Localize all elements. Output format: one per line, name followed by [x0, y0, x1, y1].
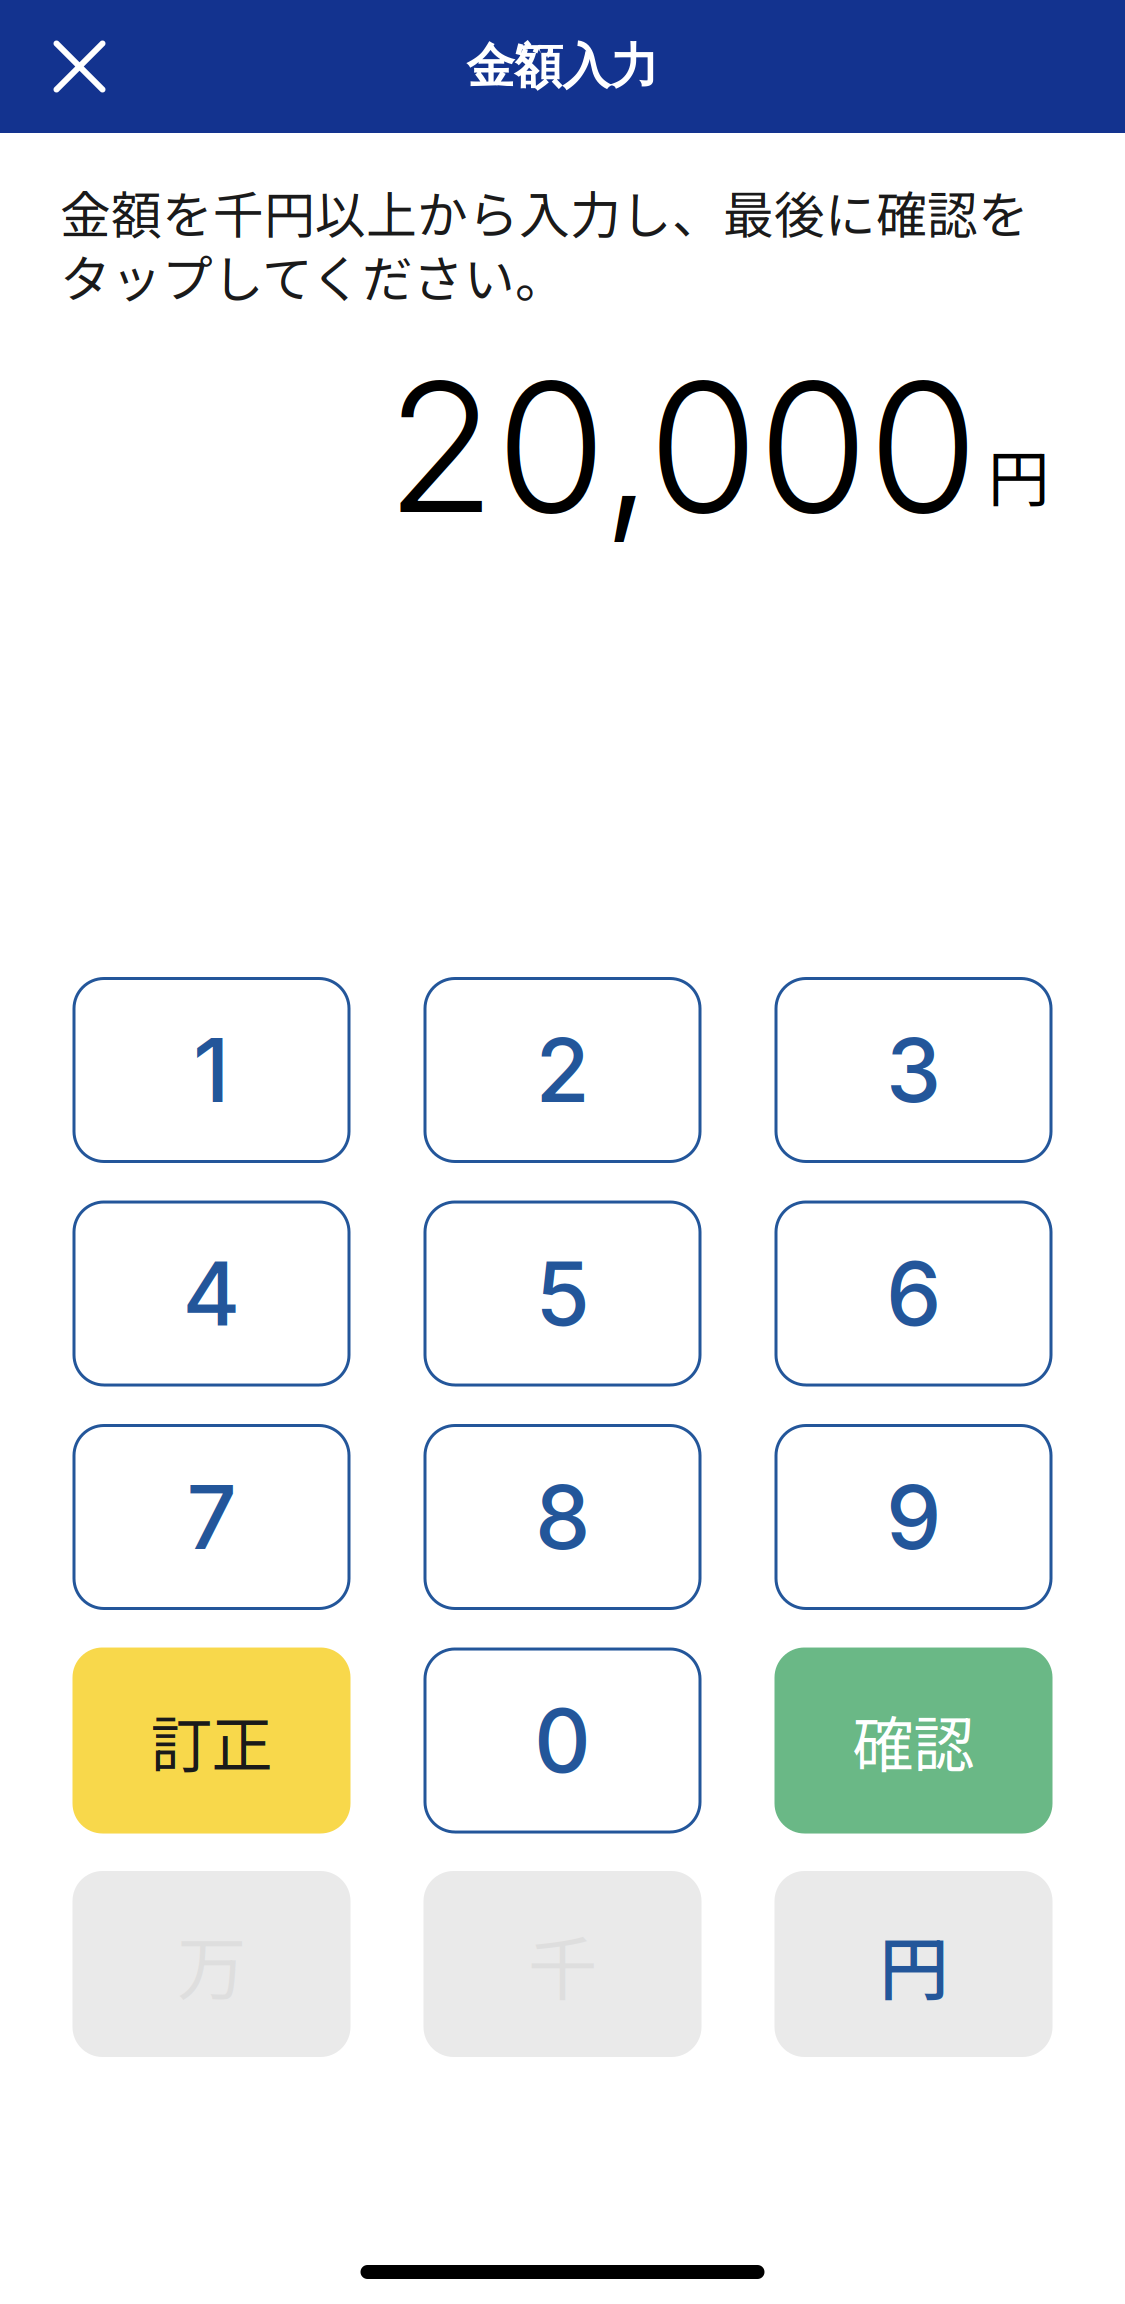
button[interactable]: 3	[774, 977, 1052, 1163]
staticText: 2	[535, 1017, 589, 1123]
button[interactable]: 円	[774, 1871, 1052, 2057]
staticText: 6	[886, 1240, 941, 1347]
staticText: タップしてください。	[60, 239, 566, 312]
button[interactable]: 訂正	[72, 1647, 350, 1833]
button[interactable]: 5	[423, 1200, 701, 1386]
staticText: 20,000	[386, 339, 978, 555]
button[interactable]: 1	[72, 977, 350, 1163]
button[interactable]: 9	[774, 1424, 1052, 1610]
staticText: 5	[535, 1240, 589, 1347]
staticText: 万	[177, 1914, 246, 2014]
button[interactable]: 8	[423, 1424, 701, 1610]
button[interactable]: 2	[423, 977, 701, 1163]
button[interactable]: 確認	[774, 1647, 1052, 1833]
staticText: 円	[879, 1914, 948, 2014]
staticText: 8	[535, 1464, 590, 1570]
staticText: 0	[534, 1687, 591, 1794]
button[interactable]: 4	[72, 1200, 350, 1386]
staticText: 円	[988, 430, 1049, 519]
staticText: 千	[528, 1914, 597, 2014]
button[interactable]: 6	[774, 1200, 1052, 1386]
button[interactable]: 0	[423, 1647, 701, 1833]
button[interactable]: 万	[72, 1871, 350, 2057]
staticText: 金額を千円以上から入力し、最後に確認を	[60, 175, 1029, 248]
staticText: 1	[193, 1017, 230, 1123]
staticText: 7	[186, 1464, 236, 1570]
staticText: 確認	[852, 1696, 974, 1785]
staticText: 9	[886, 1464, 941, 1570]
button[interactable]: Close	[0, 0, 159, 133]
button[interactable]: 7	[72, 1424, 350, 1610]
staticText: 金額入力	[466, 36, 658, 97]
staticText: 4	[182, 1240, 240, 1347]
staticText: 訂正	[150, 1696, 272, 1785]
staticText: 3	[886, 1017, 941, 1123]
